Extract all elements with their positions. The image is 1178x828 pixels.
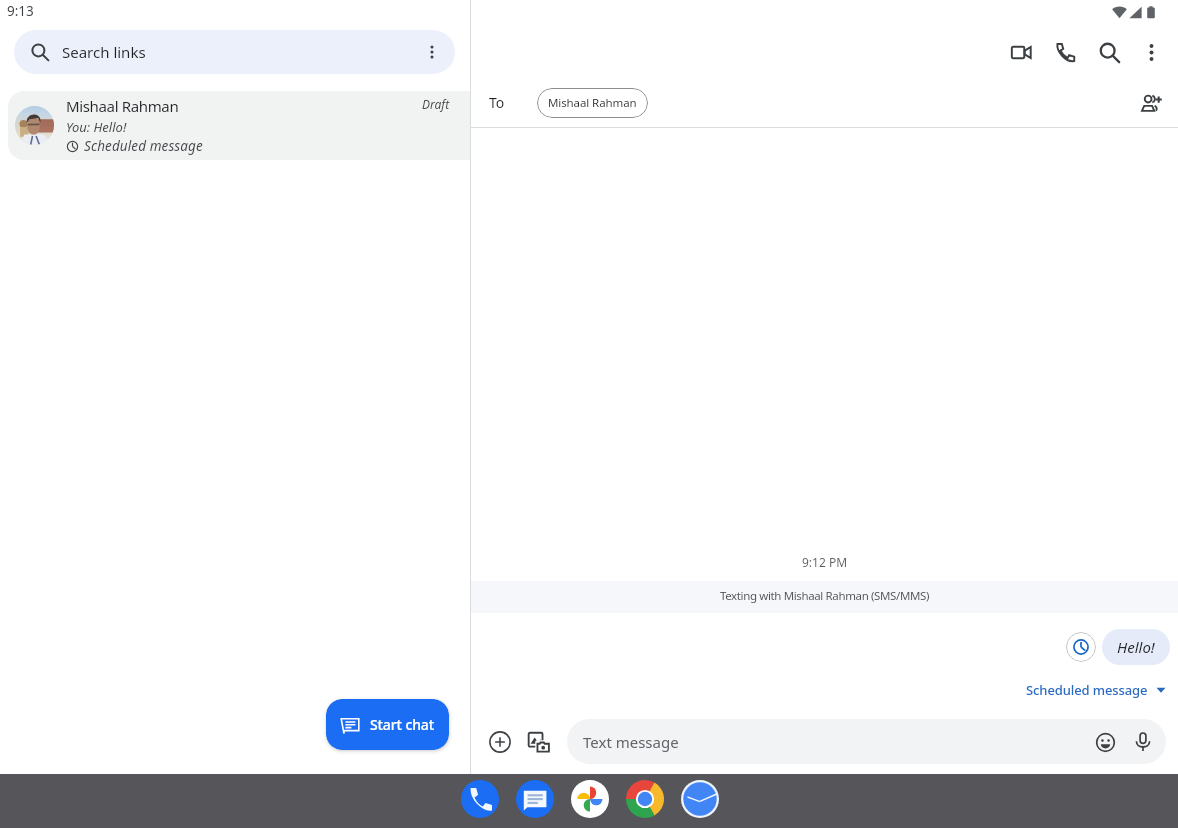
button[interactable]: Call (1043, 30, 1087, 74)
staticText: You: Hello! (66, 118, 127, 136)
button[interactable]: Messages (507, 772, 562, 826)
button[interactable]: Add attachment (479, 721, 521, 763)
button[interactable]: Chrome (617, 772, 672, 826)
staticText: Mishaal Rahman (548, 95, 637, 111)
button[interactable]: Search links (14, 30, 455, 74)
staticText: Scheduled message (1026, 681, 1148, 699)
button[interactable]: Text message (567, 719, 1166, 764)
staticText: Start chat (370, 715, 435, 734)
button[interactable]: Emoji (1086, 723, 1124, 761)
staticText: Texting with Mishaal Rahman (SMS/MMS) (720, 588, 930, 604)
button[interactable]: Search (1087, 30, 1131, 74)
staticText: Hello! (1117, 637, 1155, 657)
button[interactable]: Voice input (1124, 723, 1162, 761)
staticText: Search links (62, 42, 146, 62)
button[interactable]: Photos (562, 772, 617, 826)
button[interactable]: Mishaal Rahman (8, 91, 470, 160)
button[interactable]: Clock (672, 772, 727, 826)
button[interactable]: Scheduled (1066, 632, 1096, 662)
staticText: Mishaal Rahman (66, 96, 179, 116)
staticText: 9:13 (7, 2, 34, 20)
staticText: To (489, 93, 505, 112)
button[interactable]: Phone (452, 772, 507, 826)
button[interactable]: More options (412, 32, 452, 72)
staticText: 9:12 PM (802, 554, 848, 570)
button[interactable]: Mishaal Rahman (537, 88, 648, 118)
button[interactable]: Hello! (1102, 629, 1170, 665)
button[interactable]: More options (1131, 30, 1171, 74)
button[interactable]: Scheduled message (1022, 678, 1170, 702)
staticText: Scheduled message (84, 137, 203, 155)
button[interactable]: Start chat (326, 699, 449, 750)
button[interactable]: Video call (999, 30, 1043, 74)
staticText: Draft (422, 96, 450, 112)
button[interactable]: Add people (1129, 81, 1173, 125)
button[interactable]: Gallery (521, 724, 557, 760)
staticText: Text message (583, 732, 679, 752)
